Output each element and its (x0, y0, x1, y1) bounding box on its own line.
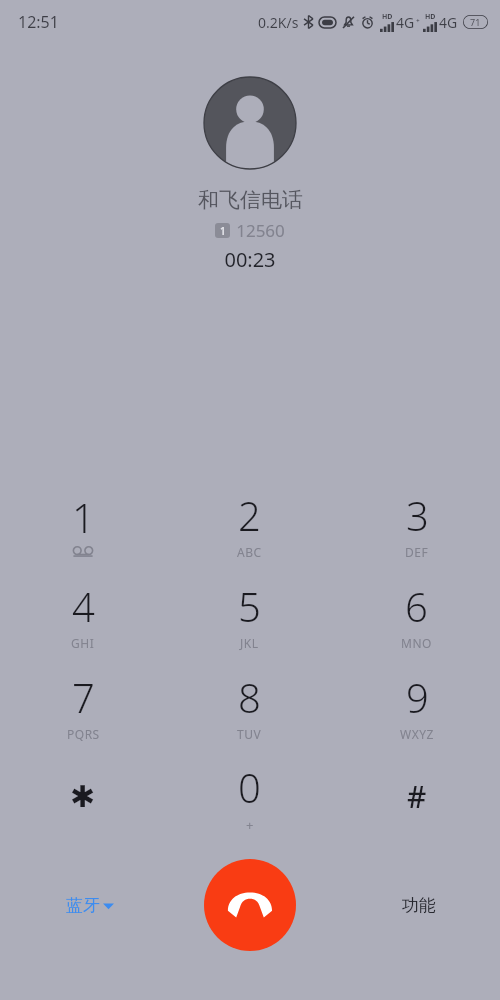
staticText: MNO (401, 635, 432, 651)
staticText: 00:23 (224, 246, 276, 273)
button[interactable]: 7 (0, 660, 166, 751)
button[interactable]: # (333, 751, 500, 842)
staticText: 2 (238, 488, 261, 542)
button[interactable]: 4 (0, 569, 166, 660)
staticText: DEF (405, 544, 429, 560)
button[interactable]: 蓝牙 (60, 889, 120, 922)
staticText: TUV (237, 726, 262, 742)
button[interactable]: 1 (0, 478, 166, 569)
staticText: 8 (238, 670, 261, 724)
staticText: 和飞信电话 (198, 187, 303, 213)
staticText: PQRS (67, 726, 100, 742)
button[interactable]: 0 (166, 751, 333, 842)
button[interactable]: 8 (166, 660, 333, 751)
staticText: HD (382, 12, 393, 22)
button[interactable]: 3 (333, 478, 500, 569)
staticText: 6 (405, 579, 428, 633)
staticText: 蓝牙 (66, 895, 100, 916)
staticText: 4G (439, 13, 458, 32)
staticText: 1 (220, 224, 226, 238)
staticText: ABC (237, 544, 262, 560)
button[interactable]: ✱ (0, 751, 166, 842)
staticText: 4 (72, 579, 95, 633)
button[interactable]: End call (204, 859, 296, 951)
staticText: 71 (470, 16, 481, 28)
staticText: WXYZ (400, 726, 434, 742)
staticText: 0 (238, 760, 261, 814)
staticText: 9 (406, 670, 429, 724)
staticText: ✱ (70, 779, 96, 814)
staticText: GHI (71, 635, 95, 651)
staticText: 功能 (402, 895, 436, 916)
staticText: 4G (396, 13, 415, 32)
staticText: 1 (72, 490, 95, 544)
staticText: # (407, 776, 427, 817)
button[interactable]: 功能 (396, 889, 442, 922)
staticText: JKL (240, 635, 259, 651)
staticText: ⁺ (416, 15, 420, 30)
button[interactable]: 9 (333, 660, 500, 751)
staticText: 3 (406, 488, 429, 542)
staticText: 7 (72, 670, 95, 724)
button[interactable]: 6 (333, 569, 500, 660)
staticText: + (246, 816, 254, 834)
staticText: HD (425, 12, 436, 22)
staticText: 5 (238, 579, 261, 633)
button[interactable]: 2 (166, 478, 333, 569)
button[interactable]: 5 (166, 569, 333, 660)
staticText: 12:51 (18, 11, 59, 33)
staticText: 0.2K/s (258, 13, 299, 32)
staticText: 12560 (236, 219, 285, 242)
